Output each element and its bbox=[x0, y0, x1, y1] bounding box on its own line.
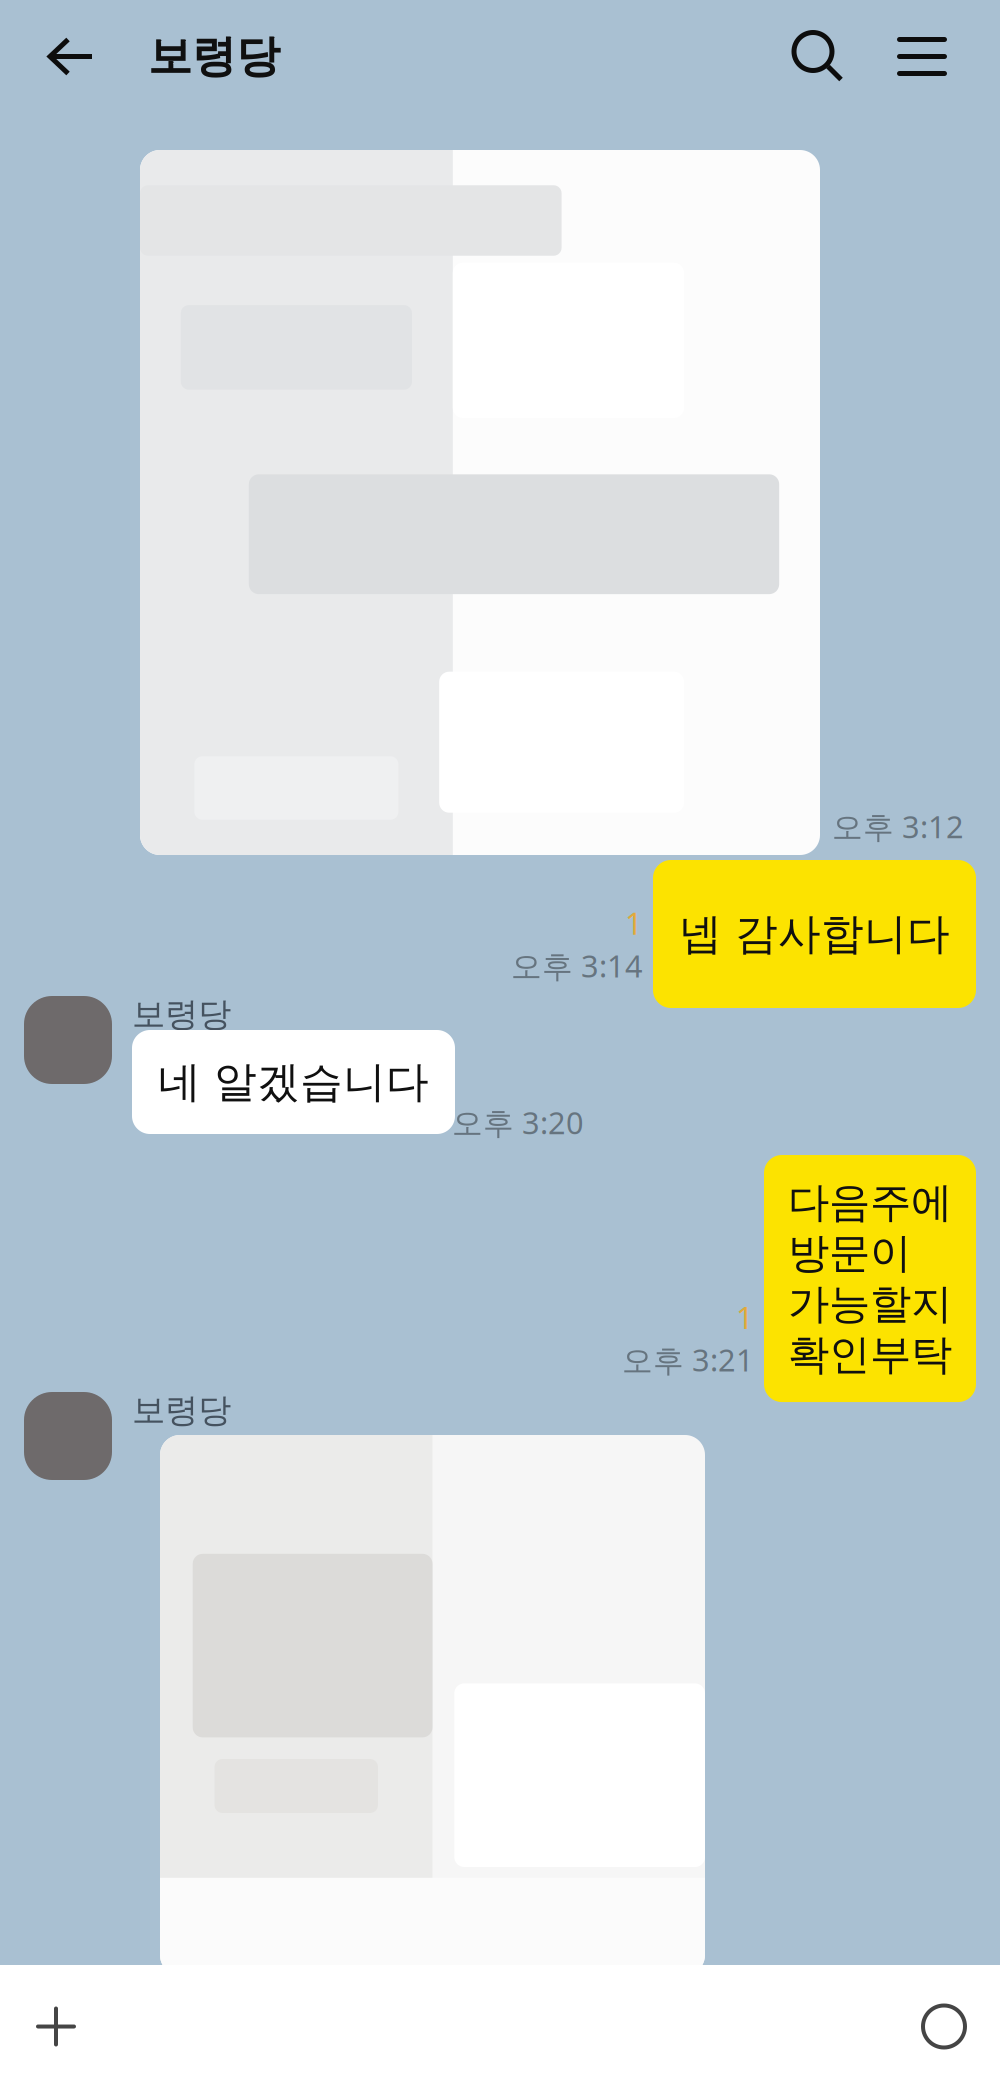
staticText: 넵 감사합니다 bbox=[679, 908, 950, 960]
button[interactable]: 다음주에 방문이 가능할지 확인부탁 bbox=[764, 1155, 976, 1402]
staticText: 오후 3:14 bbox=[511, 945, 643, 986]
button[interactable]: Back bbox=[0, 0, 148, 113]
button[interactable]: Emoji bbox=[898, 1965, 1000, 2088]
button[interactable]: Search bbox=[764, 0, 872, 113]
staticText: 1 bbox=[736, 1297, 754, 1337]
button[interactable]: 네 알겠습니다 bbox=[132, 1030, 455, 1134]
staticText: 오후 3:20 bbox=[452, 1102, 584, 1143]
button[interactable]: Add attachment bbox=[0, 1965, 106, 2088]
staticText: 다음주에 방문이 가능할지 확인부탁 bbox=[788, 1177, 952, 1380]
button[interactable]: 넵 감사합니다 bbox=[653, 860, 976, 1008]
staticText: 1 bbox=[625, 903, 643, 943]
staticText: 보령당 bbox=[132, 1390, 231, 1431]
staticText: 오후 3:12 bbox=[832, 806, 964, 847]
staticText: 오후 3:21 bbox=[622, 1339, 754, 1380]
staticText: 보령당 bbox=[148, 29, 280, 83]
staticText: 보령당 bbox=[132, 994, 231, 1035]
button[interactable]: Menu bbox=[872, 0, 1000, 113]
staticText: 네 알겠습니다 bbox=[158, 1056, 429, 1108]
